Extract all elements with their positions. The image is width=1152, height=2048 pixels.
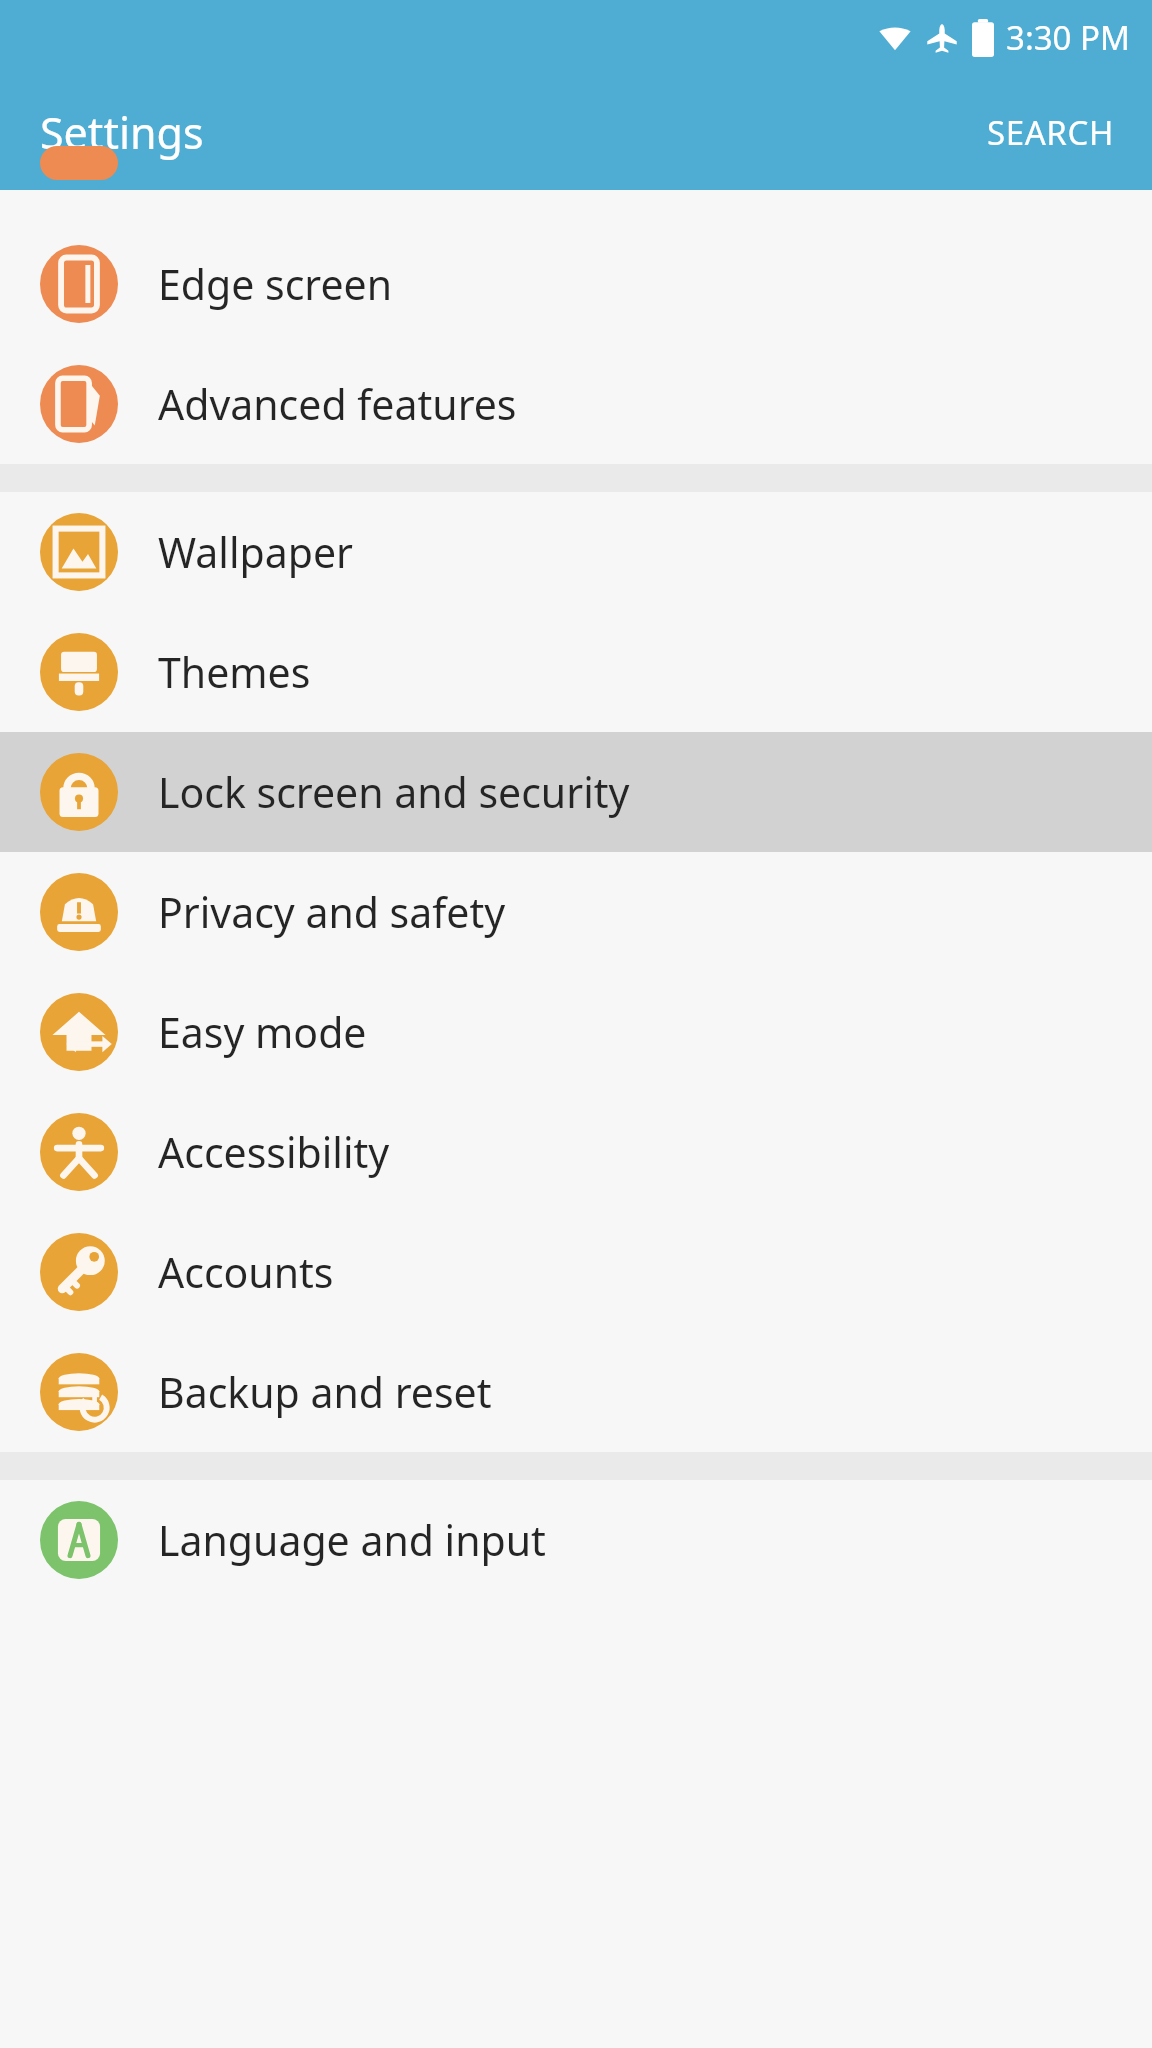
button[interactable]: SEARCH [949, 92, 1152, 173]
staticText: Privacy and safety [158, 884, 506, 940]
button[interactable]: Lock screen and security [0, 732, 1152, 852]
button[interactable]: Accounts [0, 1212, 1152, 1332]
staticText: Easy mode [158, 1004, 367, 1060]
staticText: Accessibility [158, 1124, 390, 1180]
staticText: Edge screen [158, 256, 393, 312]
staticText: Advanced features [158, 376, 517, 432]
staticText: Language and input [158, 1512, 546, 1568]
staticText: Wallpaper [158, 524, 353, 580]
button[interactable]: Easy mode [0, 972, 1152, 1092]
staticText: Settings [40, 103, 204, 162]
button[interactable]: Language and input [0, 1480, 1152, 1600]
button[interactable]: Themes [0, 612, 1152, 732]
staticText: 3:30 PM [1006, 15, 1130, 60]
button[interactable]: Accessibility [0, 1092, 1152, 1212]
staticText: SEARCH [987, 110, 1114, 155]
button[interactable]: Backup and reset [0, 1332, 1152, 1452]
staticText: Themes [158, 644, 311, 700]
staticText: Accounts [158, 1244, 334, 1300]
staticText: Backup and reset [158, 1364, 492, 1420]
button[interactable]: Wallpaper [0, 492, 1152, 612]
staticText: Lock screen and security [158, 764, 630, 820]
button[interactable]: Privacy and safety [0, 852, 1152, 972]
button[interactable]: Edge screen [0, 224, 1152, 344]
button[interactable]: Advanced features [0, 344, 1152, 464]
